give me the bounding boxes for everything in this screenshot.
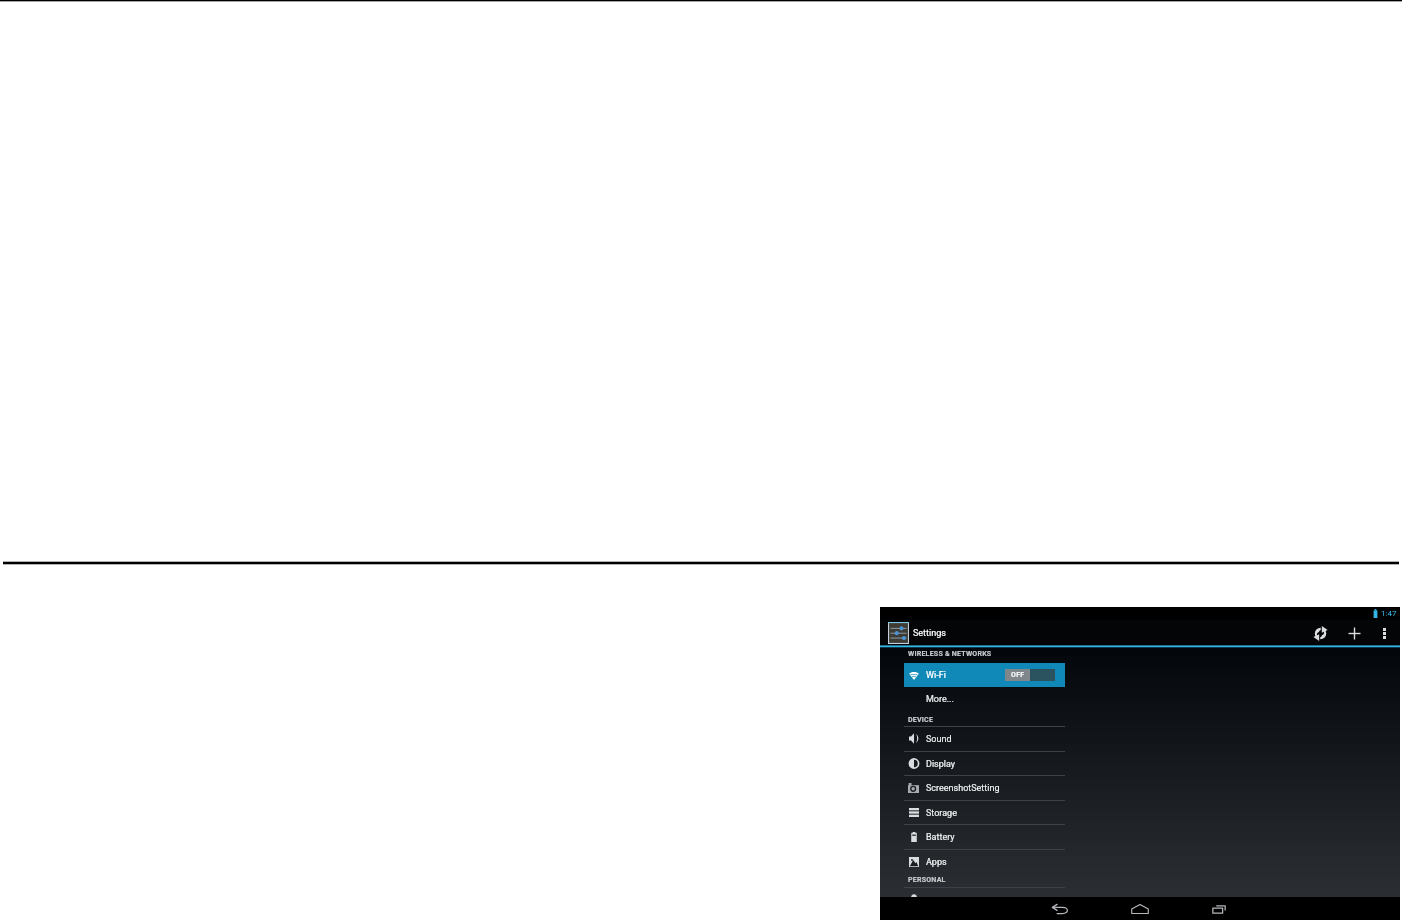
button[interactable]: ScreenshotSetting [904,776,1065,800]
button[interactable]: More... [904,687,1065,711]
button[interactable]: Apps [904,850,1065,874]
staticText: ScreenshotSetting [926,783,1000,794]
staticText: 1:47 [1381,609,1397,618]
staticText: Settings [913,628,946,639]
staticText: Sound [926,734,952,745]
staticText: WIRELESS & NETWORKS [908,649,992,657]
button[interactable]: More options [1371,621,1397,646]
button[interactable]: Display [904,752,1065,776]
button[interactable]: Battery [904,825,1065,849]
staticText: OFF [1011,671,1025,679]
button[interactable]: Wi-Fi toggle, off [1005,669,1055,681]
button[interactable]: Wi-Fi [904,663,1065,687]
button[interactable]: Home [1120,897,1160,920]
button[interactable]: Back [1040,897,1080,920]
staticText: Storage [926,808,957,819]
button[interactable]: Recent apps [1199,897,1239,920]
button[interactable]: Location [904,888,1065,912]
staticText: More... [926,694,954,705]
staticText: Wi-Fi [926,670,946,681]
staticText: DEVICE [908,715,934,723]
staticText: Apps [926,857,947,868]
button[interactable]: Storage [904,801,1065,825]
staticText: Display [926,759,956,770]
button[interactable]: Sound [904,727,1065,751]
button[interactable]: Add [1337,621,1371,646]
button[interactable]: Sync [1303,621,1337,646]
staticText: Battery [926,832,955,843]
staticText: PERSONAL [908,875,946,883]
